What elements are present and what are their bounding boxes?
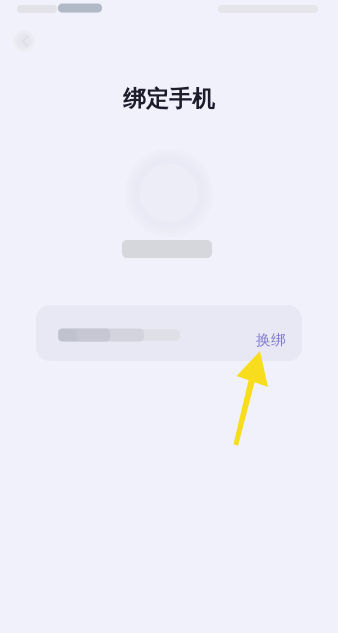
staticText: 换绑 — [256, 331, 286, 349]
staticText: 绑定手机 — [123, 85, 215, 113]
button[interactable]: 换绑 — [36, 305, 302, 361]
button[interactable]: Back — [8, 25, 40, 57]
